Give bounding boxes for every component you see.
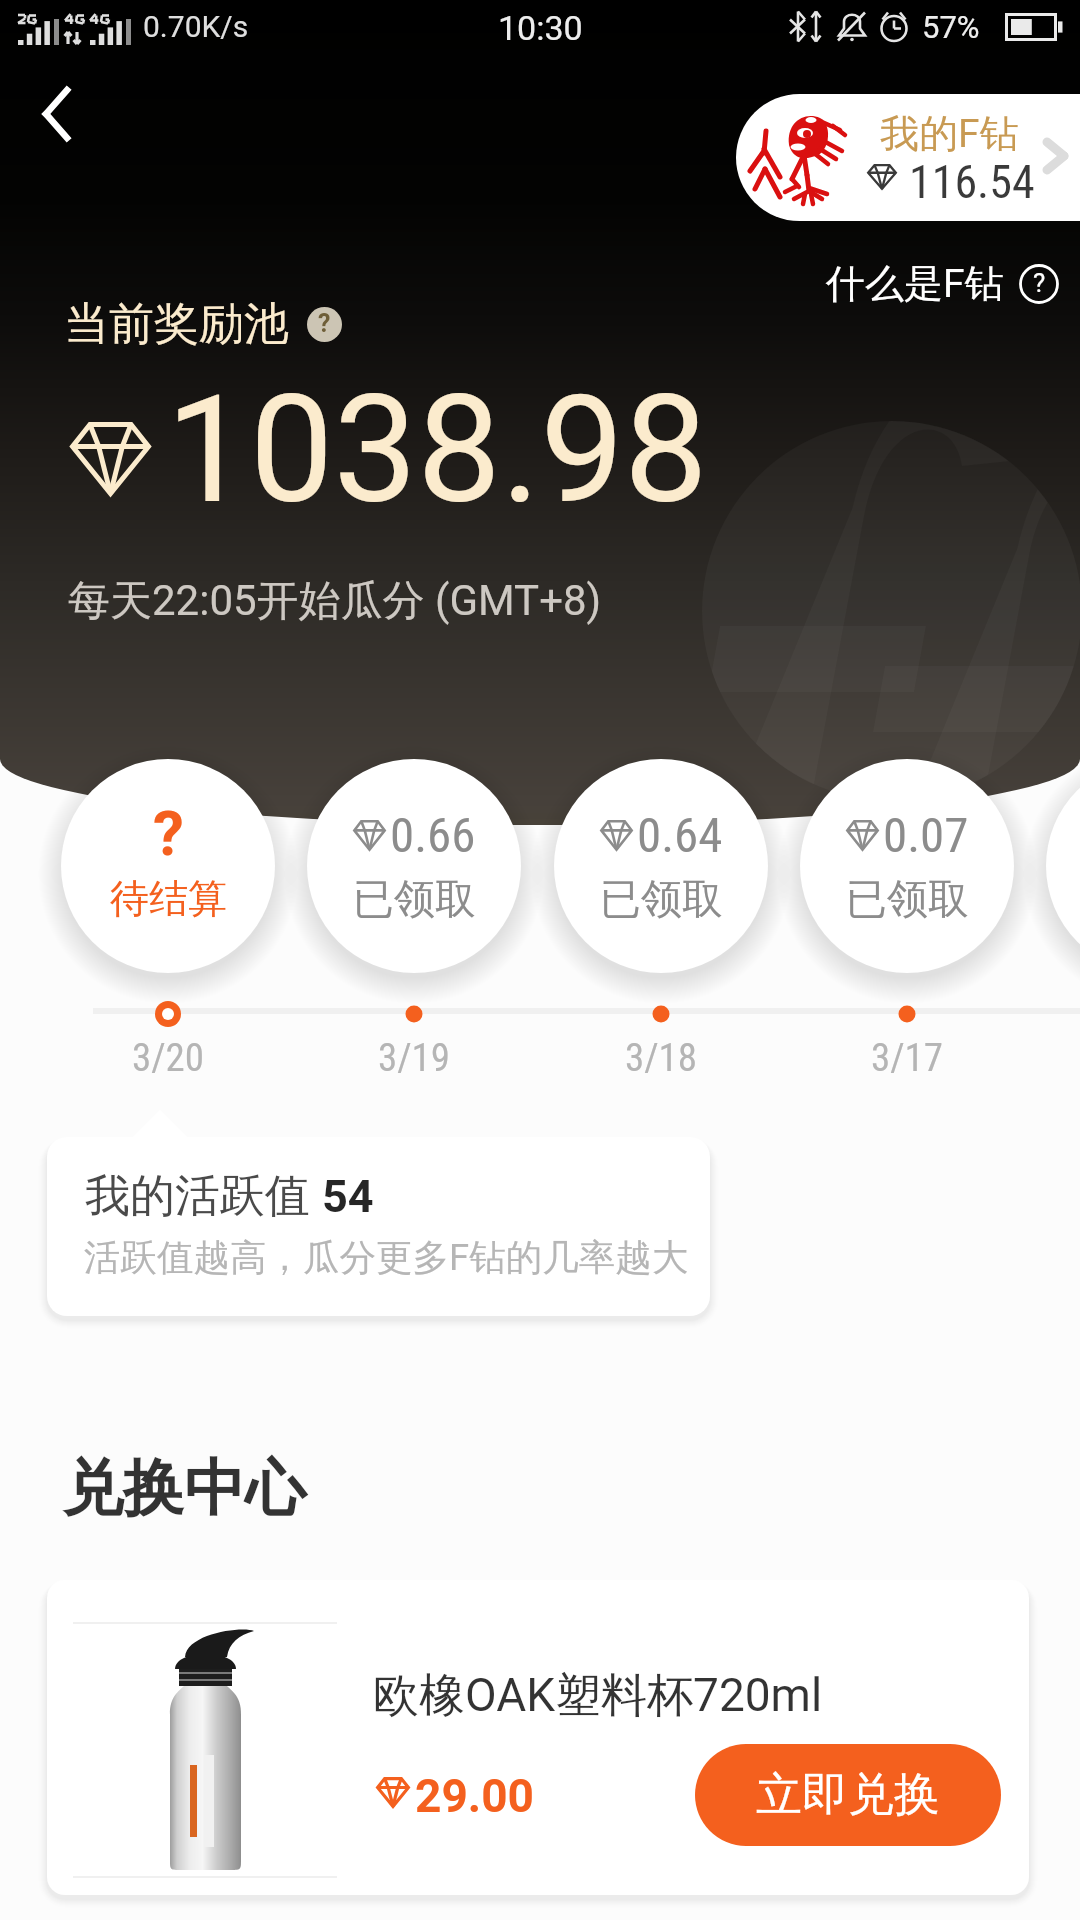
staticText: 每天22:05开始瓜分 (GMT+8) [68,575,602,628]
button[interactable]: 欧橡OAK塑料杯720ml [47,1580,1029,1895]
button[interactable]: 我的F钻 [736,94,1080,221]
staticText: 立即兑换 [756,1766,940,1824]
staticText: 3/19 [334,1035,494,1081]
staticText: 54 [322,1170,374,1223]
button[interactable]: 0.07 [800,759,1014,973]
button[interactable]: Back [8,68,100,160]
staticText: 3/17 [827,1035,987,1081]
staticText: 活跃值越高，瓜分更多F钻的几率越大 [84,1235,689,1281]
other: Open my F diamonds [1042,137,1070,175]
staticText: 0.64 [637,807,723,864]
staticText: 我的F钻 [880,109,1019,158]
button[interactable]: 0.02 [1046,759,1080,973]
staticText: 0.70K/s [143,9,249,44]
staticText: ? [318,309,331,338]
staticText: 3/20 [88,1035,248,1081]
staticText: 已领取 [353,874,476,926]
button[interactable]: What is the reward pool [307,307,342,342]
staticText: 0.07 [883,807,969,864]
staticText: 116.54 [909,155,1035,209]
staticText: 10:30 [498,8,583,48]
staticText: 29.00 [415,1769,534,1823]
staticText: ? [1033,268,1046,298]
staticText: 已领取 [600,874,723,926]
staticText: 兑换中心 [62,1450,306,1527]
staticText: 我的活跃值 [85,1168,322,1225]
staticText: 1038.98 [166,363,708,538]
staticText: 什么是F钻 [826,259,1004,308]
staticText: 0.66 [390,807,476,864]
staticText: 待结算 [110,874,227,923]
button[interactable]: ? [61,759,275,973]
staticText: 已领取 [846,874,969,926]
button[interactable]: 0.66 [307,759,521,973]
staticText: 当前奖励池 [64,296,289,353]
staticText: ? [153,797,184,870]
button[interactable]: 立即兑换 [695,1744,1001,1846]
button[interactable]: 0.64 [554,759,768,973]
staticText: 3/18 [581,1035,741,1081]
staticText: 57% [922,9,980,45]
button[interactable]: 什么是F钻 [826,259,1060,308]
button[interactable]: 我的活跃值 [47,1137,710,1316]
staticText: 欧橡OAK塑料杯720ml [373,1667,823,1725]
